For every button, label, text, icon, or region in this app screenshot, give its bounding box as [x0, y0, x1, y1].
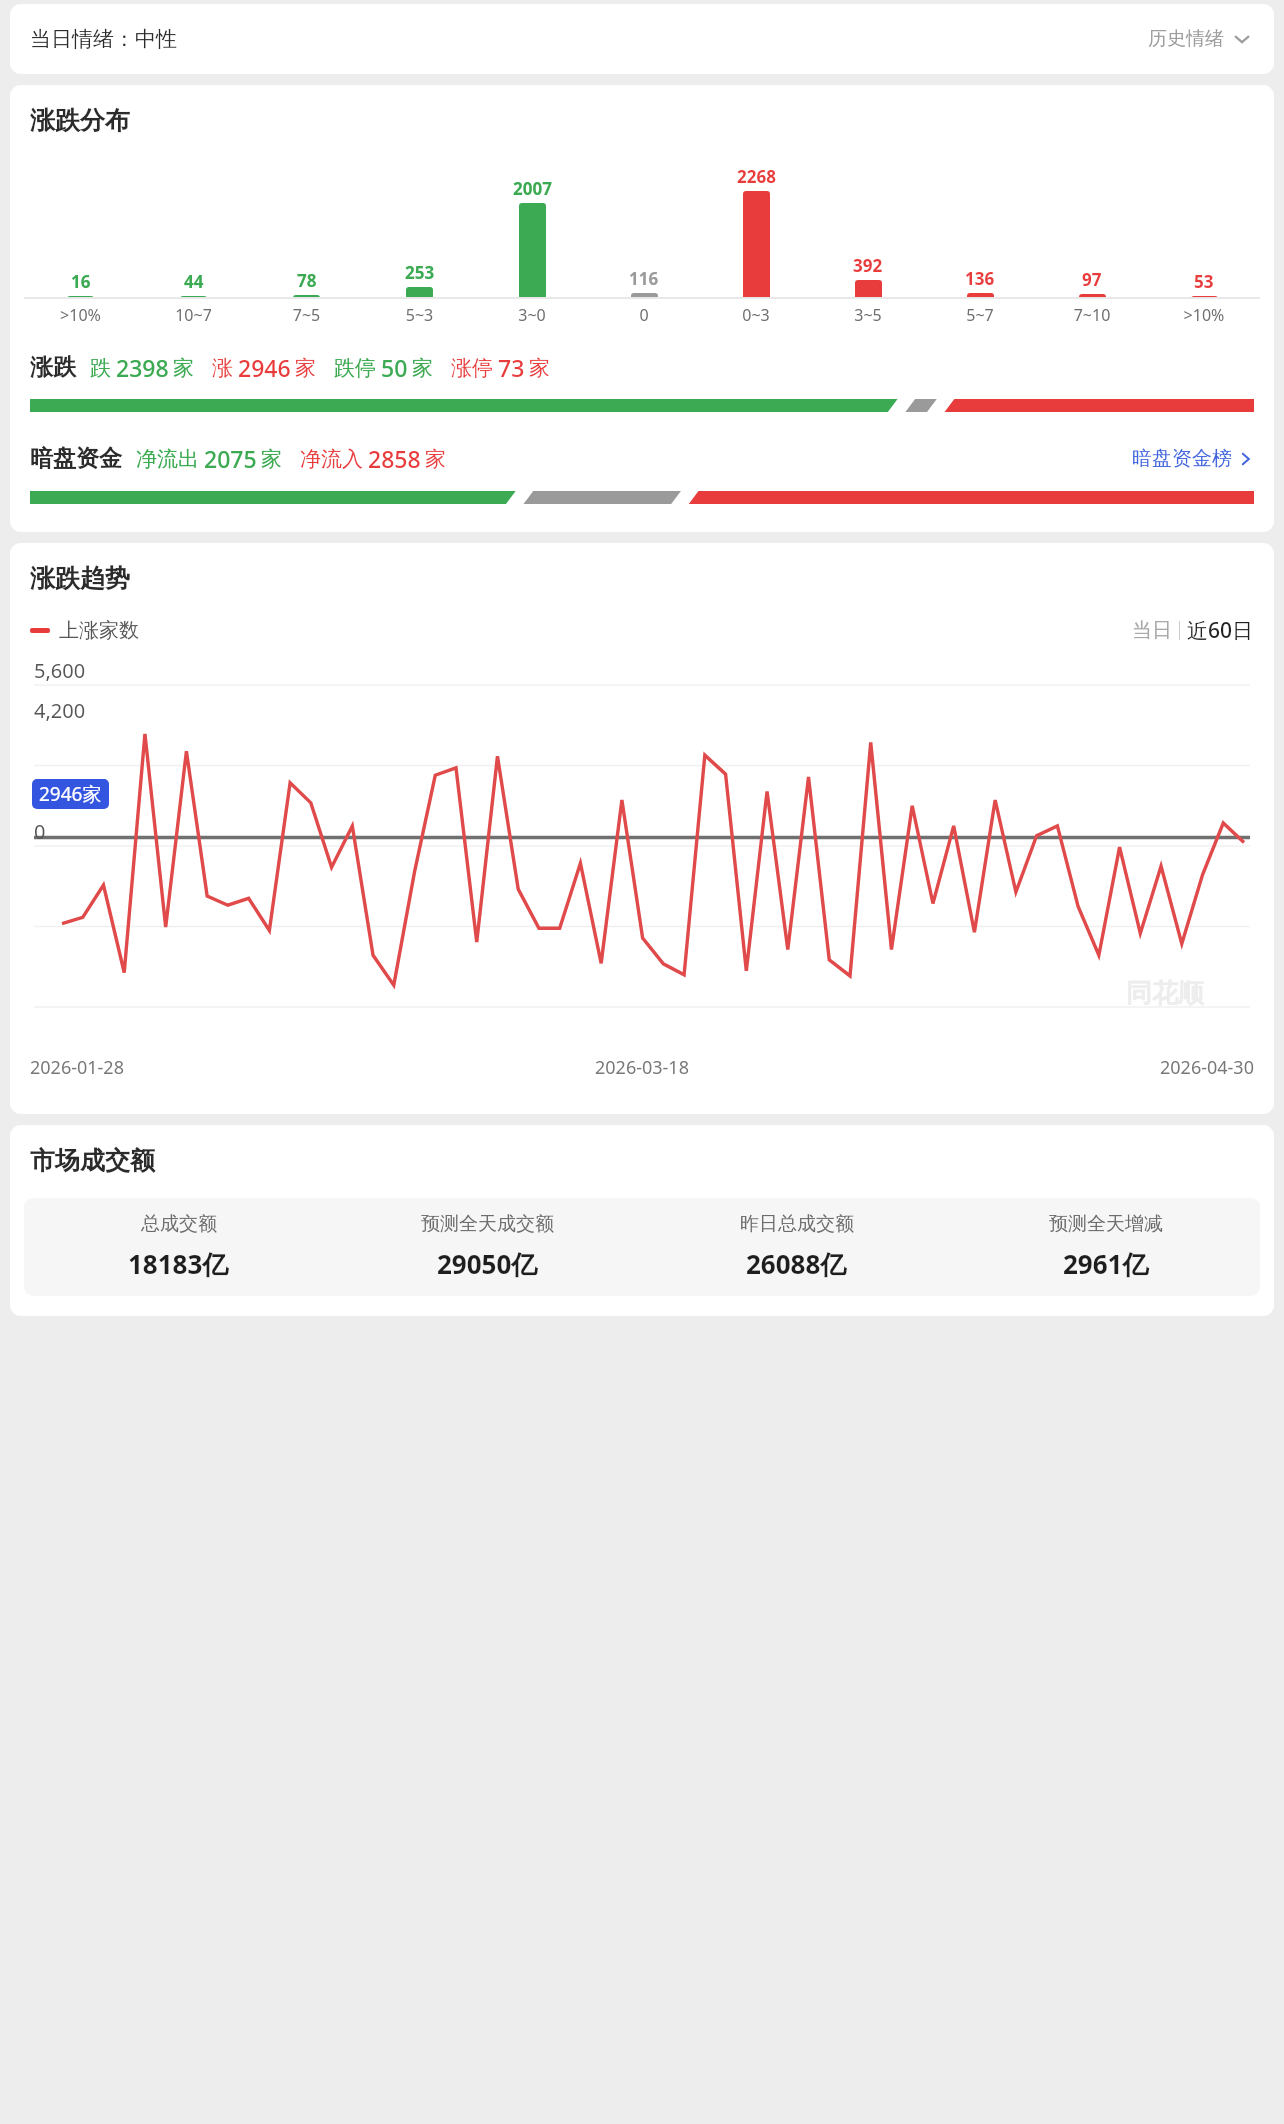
staticText: 97 — [1082, 268, 1102, 291]
staticText: 涨停 — [451, 355, 493, 381]
staticText: 5~3 — [363, 304, 476, 326]
staticText: 2268 — [737, 165, 776, 188]
staticText: 73 — [498, 352, 525, 383]
staticText: 暗盘资金 — [30, 444, 122, 473]
staticText: >10% — [1148, 304, 1260, 326]
staticText: 253 — [405, 261, 435, 284]
staticText: 5~7 — [924, 304, 1036, 326]
staticText: 涨跌趋势 — [30, 563, 130, 594]
staticText: 家 — [261, 446, 282, 472]
staticText: 涨 — [212, 355, 233, 381]
staticText: 同花顺 — [1126, 977, 1204, 1010]
staticText: 家 — [425, 446, 446, 472]
staticText: 跌停 — [334, 355, 376, 381]
staticText: 26088亿 — [746, 1246, 847, 1282]
staticText: 29050亿 — [437, 1246, 538, 1282]
staticText: 预测全天增减 — [1049, 1212, 1163, 1236]
staticText: >10% — [24, 304, 137, 326]
staticText: 当日情绪：中性 — [30, 26, 177, 52]
staticText: 家 — [173, 355, 194, 381]
staticText: 2946家 — [39, 781, 102, 807]
staticText: 136 — [965, 267, 995, 290]
staticText: 78 — [297, 269, 317, 292]
staticText: 3~0 — [476, 304, 588, 326]
staticText: 2007 — [513, 177, 552, 200]
staticText: 跌 — [90, 355, 111, 381]
staticText: 0~3 — [700, 304, 812, 326]
staticText: 44 — [184, 270, 204, 293]
staticText: 家 — [529, 355, 550, 381]
staticText: 53 — [1194, 270, 1214, 293]
staticText: 0 — [34, 818, 46, 845]
staticText: 涨跌 — [30, 353, 76, 382]
button[interactable]: 暗盘资金榜 — [1132, 442, 1254, 475]
staticText: 3~5 — [812, 304, 924, 326]
staticText: 50 — [381, 352, 408, 383]
staticText: 市场成交额 — [30, 1145, 155, 1176]
staticText: 16 — [71, 270, 91, 293]
staticText: 4,200 — [34, 697, 86, 724]
staticText: 10~7 — [137, 304, 250, 326]
staticText: 总成交额 — [141, 1212, 217, 1236]
staticText: 2026-04-30 — [1160, 1055, 1254, 1080]
staticText: 2946 — [238, 352, 291, 383]
staticText: 0 — [588, 304, 700, 326]
staticText: 7~10 — [1036, 304, 1148, 326]
staticText: 1,400 — [34, 778, 86, 805]
staticText: 家 — [412, 355, 433, 381]
staticText: 历史情绪 — [1148, 27, 1224, 51]
staticText: 预测全天成交额 — [421, 1212, 554, 1236]
staticText: 涨跌分布 — [30, 105, 130, 136]
staticText: 净流入 — [300, 446, 363, 472]
staticText: 5,600 — [34, 657, 86, 684]
staticText: 净流出 — [136, 446, 199, 472]
button[interactable]: 当日 — [1132, 618, 1172, 643]
staticText: 昨日总成交额 — [740, 1212, 854, 1236]
staticText: 2961亿 — [1063, 1246, 1149, 1282]
staticText: 暗盘资金榜 — [1132, 446, 1232, 471]
staticText: 2026-03-18 — [595, 1055, 689, 1080]
staticText: 392 — [853, 254, 883, 277]
staticText: 18183亿 — [128, 1246, 229, 1282]
staticText: 116 — [629, 267, 659, 290]
staticText: 2026-01-28 — [30, 1055, 124, 1080]
button[interactable]: 历史情绪 — [1146, 21, 1254, 57]
staticText: 2858 — [368, 443, 421, 474]
staticText: 家 — [295, 355, 316, 381]
staticText: 2075 — [204, 443, 257, 474]
button[interactable]: 近60日 — [1187, 616, 1254, 645]
staticText: 7~5 — [250, 304, 363, 326]
staticText: 上涨家数 — [59, 618, 139, 643]
staticText: 2398 — [116, 352, 169, 383]
